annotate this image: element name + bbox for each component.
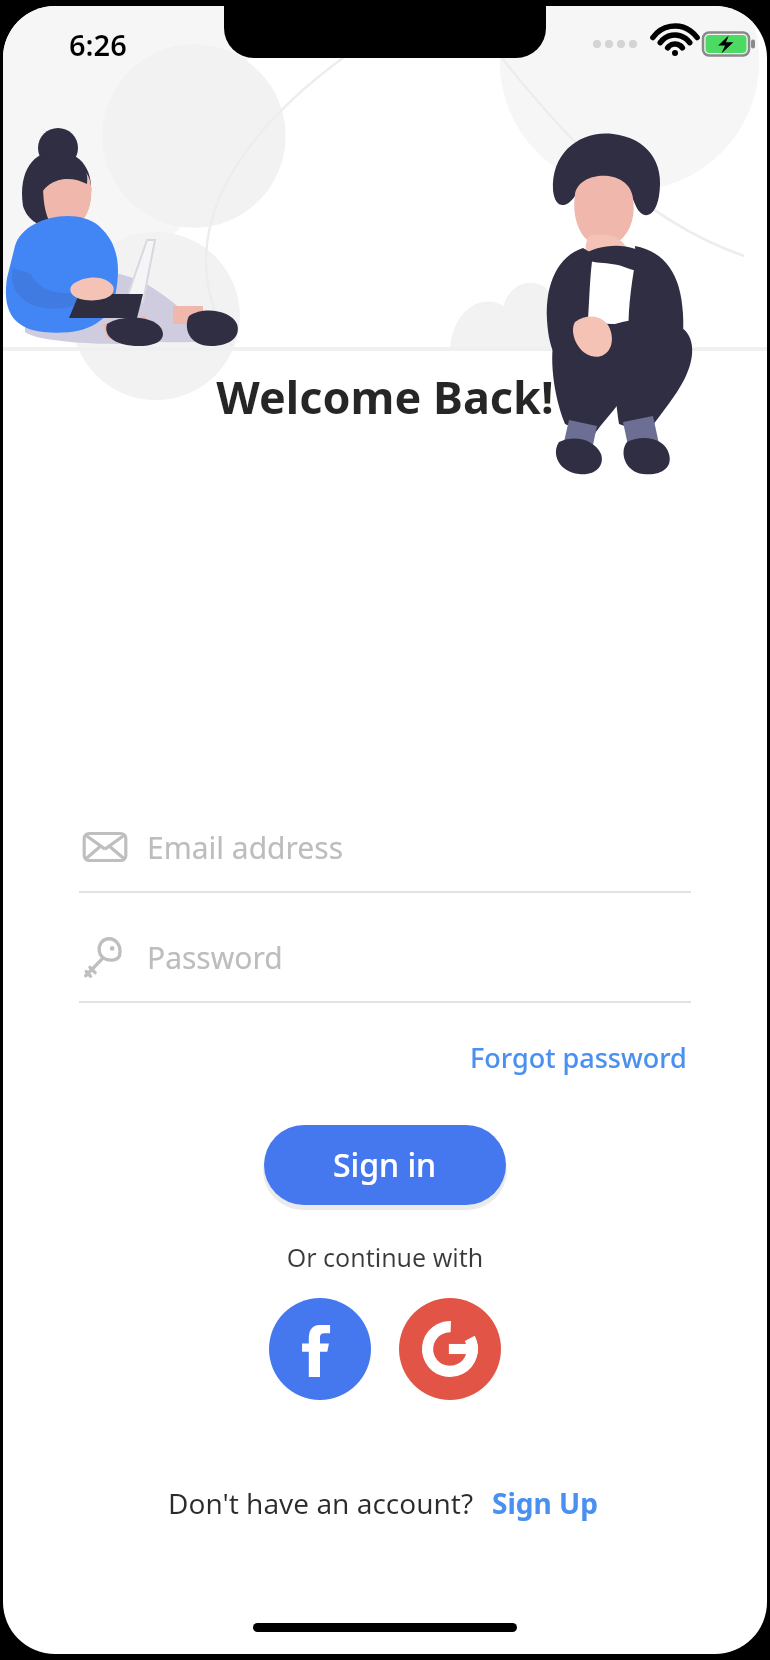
staticText: Forgot password — [470, 1039, 687, 1076]
staticText: Sign in — [333, 1143, 437, 1187]
button[interactable]: Email address — [79, 821, 691, 893]
staticText: Or continue with — [3, 1240, 767, 1274]
staticText: Don't have an account? — [168, 1484, 474, 1522]
staticText: Password — [147, 937, 283, 978]
staticText: 6:26 — [69, 25, 127, 64]
button[interactable]: Sign in — [264, 1125, 506, 1205]
button[interactable]: Password — [79, 931, 691, 1003]
button[interactable]: Continue with Facebook — [269, 1298, 371, 1400]
staticText: Email address — [147, 827, 344, 868]
button[interactable]: Forgot password — [466, 1033, 691, 1082]
staticText: Sign Up — [492, 1484, 598, 1522]
button[interactable]: Sign Up — [488, 1480, 602, 1526]
staticText: Welcome Back! — [3, 366, 767, 427]
button[interactable]: Continue with Google — [399, 1298, 501, 1400]
